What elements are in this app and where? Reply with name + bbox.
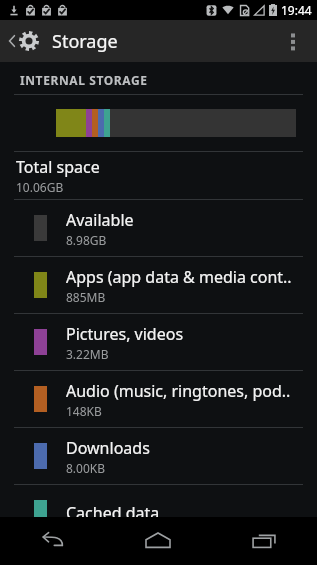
button[interactable]: Total space (0, 152, 317, 199)
staticText: Storage (52, 29, 118, 54)
staticText: 885MB (66, 289, 106, 305)
button[interactable]: Audio (music, ringtones, pod.. (0, 371, 317, 427)
staticText: Downloads (66, 437, 150, 459)
button[interactable]: Available (0, 200, 317, 256)
button[interactable]: Home (105, 517, 211, 565)
staticText: Pictures, videos (66, 323, 184, 345)
staticText: Audio (music, ringtones, pod.. (66, 380, 291, 402)
button[interactable]: Cached data (0, 485, 317, 541)
staticText: 3.22MB (66, 346, 109, 362)
button[interactable]: Recent apps (211, 517, 317, 565)
staticText: 8.98GB (66, 232, 107, 248)
staticText: 148KB (66, 403, 102, 419)
button[interactable]: Back (0, 517, 105, 565)
staticText: 10.06GB (16, 179, 64, 195)
button[interactable]: More options (269, 20, 317, 62)
staticText: 19:44 (281, 2, 312, 18)
button[interactable]: Downloads (0, 428, 317, 484)
staticText: Available (66, 209, 134, 231)
staticText: INTERNAL STORAGE (20, 72, 148, 88)
button[interactable]: Navigate up, Settings (4, 26, 44, 56)
staticText: 8.00KB (66, 460, 106, 476)
button[interactable]: Apps (app data & media cont.. (0, 257, 317, 313)
staticText: Total space (16, 156, 100, 178)
staticText: Apps (app data & media cont.. (66, 266, 292, 288)
staticText: Cached data (66, 502, 160, 524)
button[interactable]: Pictures, videos (0, 314, 317, 370)
